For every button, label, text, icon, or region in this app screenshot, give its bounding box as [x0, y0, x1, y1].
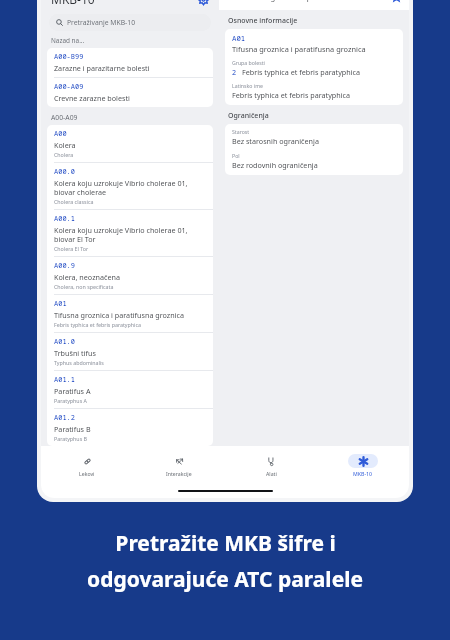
button[interactable]: Alati [225, 446, 317, 484]
staticText: Kolera, neoznačena [54, 272, 120, 282]
staticText: A00-A09 [51, 113, 78, 122]
staticText: Cholera classica [54, 198, 94, 205]
staticText: Bez starosnih ograničenja [232, 136, 319, 146]
staticText: MKB-10 [353, 470, 373, 477]
staticText: Osnovne informacije [228, 16, 298, 26]
button[interactable]: A01.2 [47, 409, 213, 446]
staticText: Latinsko ime [232, 82, 263, 89]
staticText: A01 Tifusna groznica i paratifus... [227, 0, 388, 2]
button[interactable]: Favorite [388, 0, 404, 5]
button[interactable]: Settings [194, 0, 212, 8]
button[interactable]: A00.0 [47, 163, 213, 209]
staticText: Paratyphus A [54, 397, 87, 404]
staticText: Cholera, non specificata [54, 283, 114, 290]
staticText: Kolera koju uzrokuje Vibrio cholerae 01,… [54, 178, 208, 197]
button[interactable]: A00.9 [47, 257, 213, 294]
staticText: A00 [54, 129, 67, 139]
staticText: Cholera [54, 151, 74, 158]
staticText: A01.1 [54, 375, 75, 385]
staticText: A01.2 [54, 413, 75, 423]
staticText: Lekovi [79, 470, 95, 477]
staticText: A01 [232, 33, 246, 43]
button[interactable]: A00.1 [47, 210, 213, 256]
button[interactable]: Interakcije [133, 446, 225, 484]
button[interactable]: A00-A09 [47, 78, 213, 107]
button[interactable]: Lekovi [41, 446, 133, 484]
staticText: Bez rodovnih ograničenja [232, 160, 318, 170]
staticText: odgovarajuće ATC paralele [87, 565, 363, 594]
button[interactable]: Pretraživanje MKB-10 [49, 14, 211, 31]
staticText: A00.0 [54, 167, 75, 177]
staticText: Pol [232, 152, 240, 159]
button[interactable]: MKB-10 [317, 446, 409, 484]
staticText: A00.9 [54, 261, 75, 271]
staticText: Tifusna groznica i paratifusna groznica [54, 310, 184, 320]
staticText: Typhus abdominalis [54, 359, 104, 366]
staticText: A00.1 [54, 214, 75, 224]
button[interactable]: A01 [47, 295, 213, 332]
staticText: MKB-10 [51, 0, 95, 7]
staticText: Febris typhica et febris paratyphica [242, 67, 361, 77]
staticText: Paratifus B [54, 424, 91, 434]
staticText: Ograničenja [228, 111, 269, 121]
button[interactable]: A00 [47, 125, 213, 162]
staticText: Alati [266, 470, 277, 477]
button[interactable]: A01.1 [47, 371, 213, 408]
staticText: 2 [232, 67, 237, 77]
staticText: Cholera El Tor [54, 245, 89, 252]
staticText: Starost [232, 128, 250, 135]
button[interactable]: A01.0 [47, 333, 213, 370]
staticText: A01.0 [54, 337, 75, 347]
staticText: Pretraživanje MKB-10 [67, 18, 136, 27]
staticText: Trbušni tifus [54, 348, 96, 358]
staticText: A00-B99 [54, 52, 84, 62]
staticText: Interakcije [166, 470, 192, 477]
staticText: Nazad na... [51, 36, 85, 45]
staticText: Paratifus A [54, 386, 91, 396]
staticText: Grupa bolesti [232, 59, 265, 66]
staticText: Tifusna groznica i paratifusna groznica [232, 44, 366, 54]
staticText: Paratyphus B [54, 435, 88, 442]
staticText: Kolera koju uzrokuje Vibrio cholerae 01,… [54, 225, 208, 244]
staticText: Kolera [54, 140, 76, 150]
staticText: Crevne zarazne bolesti [54, 93, 130, 103]
staticText: Febris typhica et febris paratyphica [232, 90, 351, 100]
staticText: Zarazne i parazitarne bolesti [54, 63, 150, 73]
button[interactable]: A00-B99 [47, 48, 213, 77]
staticText: A01 [54, 299, 67, 309]
staticText: A00-A09 [54, 82, 84, 92]
staticText: Pretražite MKB šifre i [115, 529, 336, 558]
staticText: Febris typhica et febris paratyphica [54, 321, 141, 328]
